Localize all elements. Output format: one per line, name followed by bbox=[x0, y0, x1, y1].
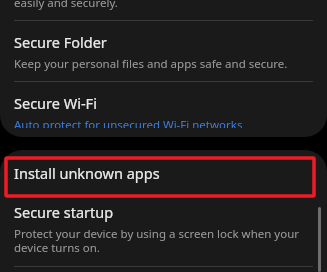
staticText: Secure Wi-Fi bbox=[14, 93, 97, 113]
button[interactable]: Install unknown apps bbox=[0, 150, 327, 196]
button[interactable]: Secure Folder bbox=[0, 21, 327, 81]
staticText: easily and securely. bbox=[14, 0, 118, 11]
staticText: Protect your device by using a screen lo… bbox=[14, 226, 313, 255]
staticText: Auto protect for unsecured Wi-Fi network… bbox=[14, 117, 243, 128]
staticText: Install unknown apps bbox=[14, 163, 160, 183]
staticText: Keep your personal files and apps safe a… bbox=[14, 56, 288, 72]
staticText: Secure startup bbox=[14, 202, 114, 222]
button[interactable]: Secure Wi-Fi bbox=[0, 82, 327, 137]
button[interactable]: Secure startup bbox=[0, 196, 327, 263]
staticText: Secure Folder bbox=[14, 32, 107, 52]
